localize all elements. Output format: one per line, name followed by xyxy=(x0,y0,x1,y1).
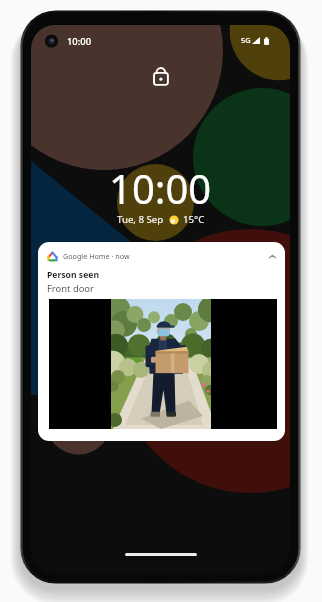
button[interactable]: Google Home · now xyxy=(38,242,285,441)
staticText: Google Home · now xyxy=(63,251,130,261)
staticText: Person seen xyxy=(47,269,99,281)
other: Collapse notification xyxy=(267,252,278,263)
staticText: Front door xyxy=(47,282,94,295)
other: Unlocked, swipe up to open xyxy=(152,65,170,87)
staticText: 15°C xyxy=(183,213,205,226)
staticText: 5G xyxy=(241,35,251,45)
staticText: 10:00 xyxy=(67,35,92,48)
staticText: Tue, 8 Sep xyxy=(117,213,164,226)
staticText: 10:00 xyxy=(109,161,212,215)
